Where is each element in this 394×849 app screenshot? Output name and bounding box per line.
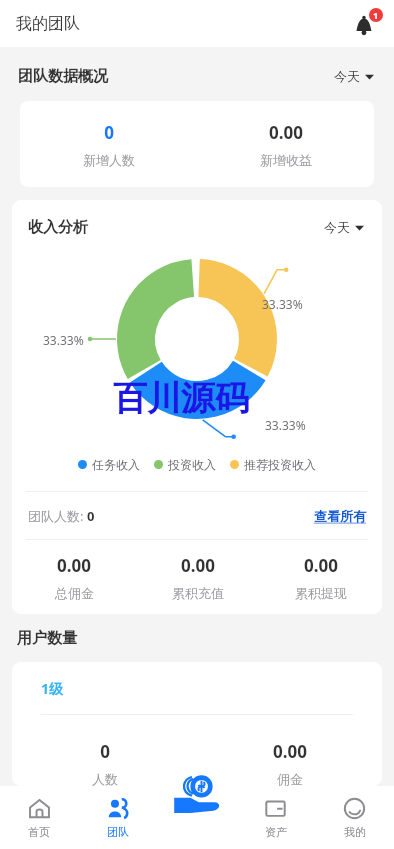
staticText: 0 — [100, 740, 110, 763]
staticText: 收入分析 — [28, 218, 88, 237]
staticText: 0.00 — [269, 121, 303, 144]
staticText: 首页 — [28, 825, 50, 839]
staticText: 推荐投资收入 — [244, 457, 316, 472]
staticText: 查看所有 — [314, 508, 366, 524]
staticText: 0.00 — [181, 554, 215, 577]
button[interactable]: 今天 — [332, 64, 376, 88]
staticText: 我的团队 — [16, 14, 80, 34]
staticText: 33.33% — [43, 332, 84, 348]
staticText: 团队人数: — [28, 507, 87, 525]
button[interactable]: Notifications — [349, 7, 383, 41]
button[interactable]: Earn — [167, 763, 227, 823]
staticText: 累积提现 — [295, 585, 347, 601]
staticText: 任务收入 — [92, 457, 140, 472]
staticText: 团队数据概况 — [18, 67, 108, 86]
staticText: 用户数量 — [17, 629, 77, 648]
staticText: 佣金 — [277, 771, 303, 786]
staticText: 0.00 — [57, 554, 91, 577]
staticText: 33.33% — [265, 417, 306, 433]
button[interactable]: 我的 — [315, 786, 394, 849]
staticText: 我的 — [344, 825, 366, 839]
staticText: 团队 — [107, 825, 129, 839]
staticText: 0 — [104, 121, 114, 144]
button[interactable]: 今天 — [322, 215, 366, 239]
staticText: 0 — [87, 507, 95, 525]
staticText: 今天 — [324, 219, 350, 235]
button[interactable]: 查看所有 — [314, 504, 366, 528]
staticText: 1级 — [41, 679, 64, 698]
staticText: 累积充值 — [172, 585, 224, 601]
staticText: 总佣金 — [55, 585, 94, 601]
staticText: 今天 — [334, 68, 360, 84]
staticText: 1 — [373, 9, 379, 21]
button[interactable]: 首页 — [0, 786, 78, 849]
staticText: 新增收益 — [260, 152, 312, 168]
button[interactable]: 资产 — [236, 786, 315, 849]
staticText: 0.00 — [273, 740, 307, 763]
staticText: 0.00 — [304, 554, 338, 577]
staticText: 百川源码 — [113, 377, 249, 420]
staticText: 投资收入 — [168, 457, 216, 472]
staticText: 33.33% — [262, 296, 303, 312]
button[interactable]: 团队 — [78, 786, 157, 849]
staticText: 新增人数 — [83, 152, 135, 168]
staticText: 人数 — [92, 771, 118, 786]
staticText: 资产 — [265, 825, 287, 839]
